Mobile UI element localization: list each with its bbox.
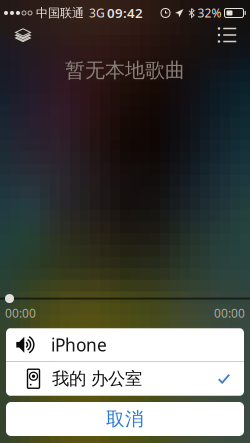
button[interactable]: 取消: [6, 402, 244, 436]
staticText: 00:00: [5, 305, 36, 321]
staticText: 3G: [89, 5, 105, 21]
staticText: 中国联通: [36, 6, 84, 20]
button[interactable]: 我的 办公室: [6, 362, 244, 396]
staticText: 32%: [197, 5, 221, 21]
button[interactable]: Playlist: [208, 20, 246, 50]
staticText: 取消: [106, 407, 144, 430]
button[interactable]: iPhone: [6, 328, 244, 361]
staticText: 我的 办公室: [52, 368, 142, 389]
staticText: 09:42: [107, 4, 143, 22]
staticText: 暂无本地歌曲: [65, 58, 185, 83]
staticText: iPhone: [51, 333, 107, 356]
staticText: 00:00: [214, 305, 245, 321]
button[interactable]: Library: [4, 20, 42, 50]
